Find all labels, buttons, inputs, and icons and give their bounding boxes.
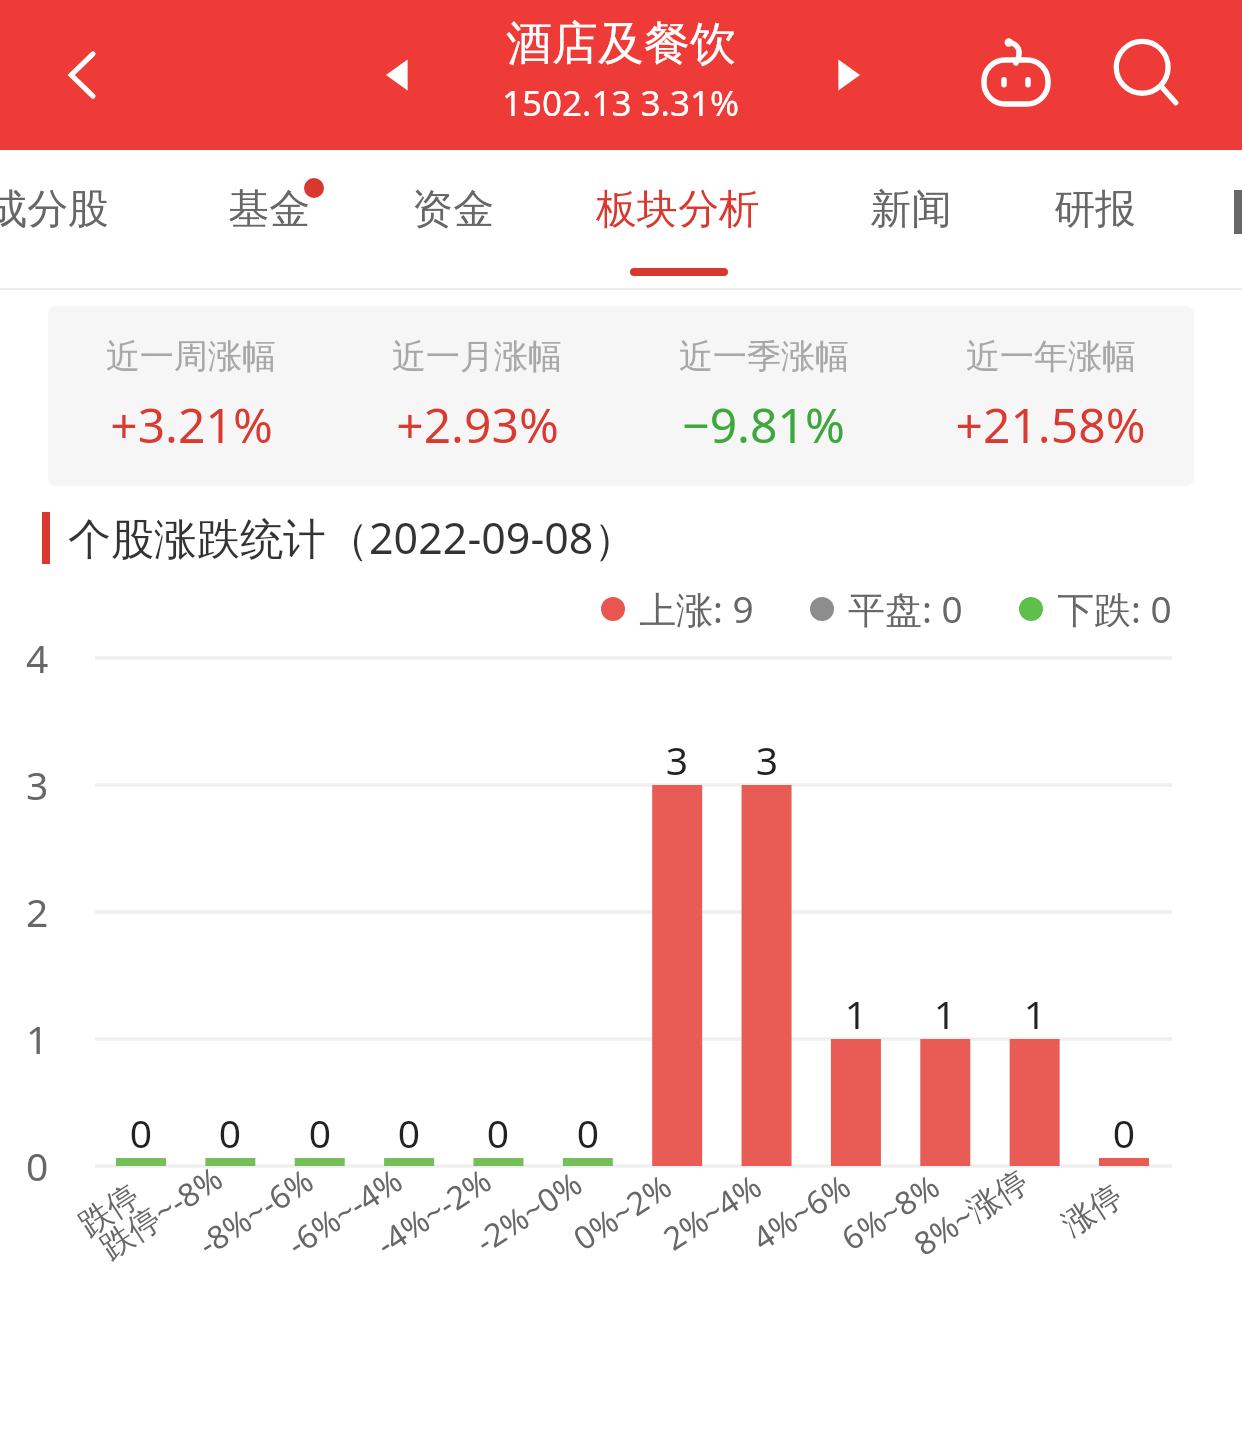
staticText: 酒店及餐饮 [506, 15, 736, 73]
staticText: -4%~-2% [367, 1158, 500, 1266]
staticText: 0 [86, 1106, 196, 1159]
staticText: 跌停~-8% [91, 1156, 231, 1268]
button[interactable]: 平盘: 0 [810, 583, 963, 634]
staticText: 2%~4% [655, 1164, 770, 1260]
button[interactable]: Next sector [818, 45, 878, 105]
staticText: 近一季涨幅 [679, 335, 849, 378]
staticText: 4 [26, 631, 49, 684]
staticText: 新闻 [870, 184, 952, 236]
staticText: −9.81% [682, 392, 845, 457]
staticText: 基金 [228, 184, 310, 236]
staticText: 0 [175, 1106, 285, 1159]
staticText: 跌停 [71, 1176, 147, 1244]
staticText: 研报 [1054, 184, 1136, 236]
staticText: 0 [26, 1139, 49, 1192]
staticText: 3 [622, 733, 732, 786]
button[interactable]: 新闻 [864, 168, 958, 252]
staticText: 1502.13 3.31% [502, 79, 740, 127]
staticText: 0 [443, 1106, 553, 1159]
staticText: -8%~-6% [189, 1158, 322, 1266]
button[interactable]: Previous sector [368, 45, 428, 105]
staticText: -2%~0% [467, 1161, 590, 1263]
staticText: 4%~6% [744, 1164, 859, 1260]
staticText: 成分股 [0, 184, 109, 236]
staticText: 1 [980, 987, 1090, 1040]
staticText: +3.21% [110, 392, 273, 457]
staticText: +2.93% [396, 392, 559, 457]
staticText: 0 [354, 1106, 464, 1159]
button[interactable]: Back [52, 43, 116, 107]
staticText: 2 [26, 885, 49, 938]
button[interactable]: 近一季涨幅 [620, 335, 907, 457]
button[interactable]: 近一年涨幅 [907, 335, 1194, 457]
staticText: 1 [801, 987, 911, 1040]
staticText: 3 [26, 758, 49, 811]
staticText: 0 [265, 1106, 375, 1159]
button[interactable]: 近一月涨幅 [334, 335, 620, 457]
button[interactable]: 成分股 [0, 168, 115, 252]
staticText: 上涨: 9 [639, 583, 754, 634]
staticText: 3 [712, 733, 822, 786]
staticText: 6%~8% [833, 1164, 948, 1260]
staticText: -6%~-4% [278, 1158, 411, 1266]
staticText: 涨停 [1054, 1176, 1130, 1244]
button[interactable]: 研报 [1048, 168, 1142, 252]
staticText: +21.58% [955, 392, 1146, 457]
button[interactable]: 上涨: 9 [601, 583, 754, 634]
button[interactable]: 近一周涨幅 [48, 335, 334, 457]
staticText: 8%~涨停 [905, 1159, 1037, 1265]
staticText: 下跌: 0 [1057, 583, 1172, 634]
button[interactable]: Search [1098, 27, 1194, 123]
button[interactable]: AI assistant [966, 25, 1066, 125]
staticText: 1 [890, 987, 1000, 1040]
staticText: 近一周涨幅 [106, 335, 276, 378]
button[interactable]: 资金 [406, 168, 500, 252]
button[interactable]: 板块分析 [590, 168, 766, 252]
staticText: 0%~2% [565, 1164, 680, 1260]
staticText: 0 [533, 1106, 643, 1159]
staticText: 平盘: 0 [848, 583, 963, 634]
staticText: 资金 [412, 184, 494, 236]
staticText: 个股涨跌统计（2022-09-08） [68, 508, 637, 567]
staticText: 0 [1069, 1106, 1179, 1159]
staticText: 板块分析 [596, 184, 760, 236]
staticText: 1 [26, 1012, 49, 1065]
staticText: 近一月涨幅 [392, 335, 562, 378]
button[interactable]: 基金 [222, 168, 316, 252]
button[interactable]: 下跌: 0 [1019, 583, 1172, 634]
staticText: 近一年涨幅 [966, 335, 1136, 378]
